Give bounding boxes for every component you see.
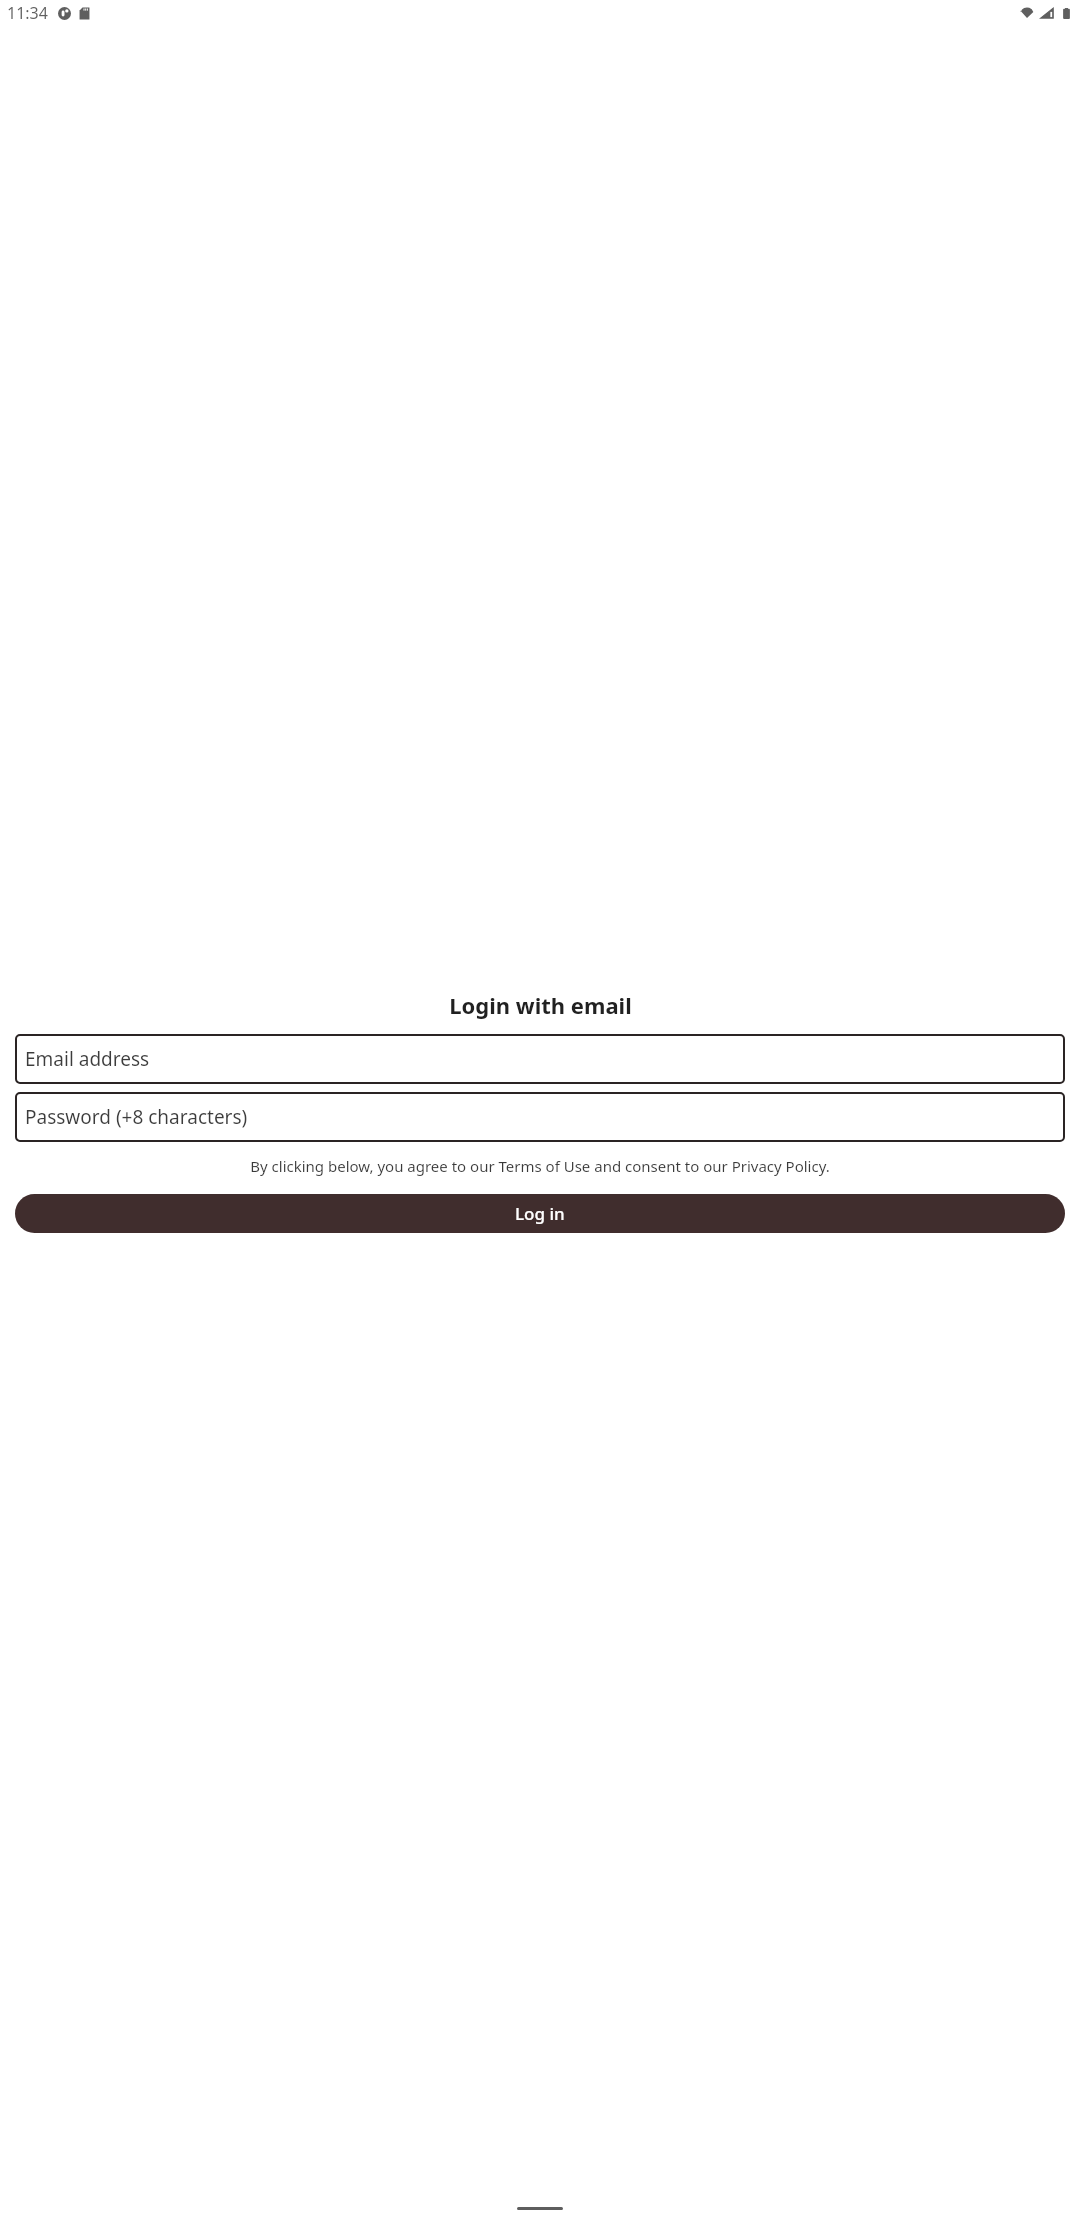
staticText: By clicking below, you agree to our Term… bbox=[15, 1156, 1065, 1176]
button[interactable]: Email address bbox=[15, 1034, 1065, 1084]
staticText: Password (+8 characters) bbox=[25, 1104, 248, 1130]
staticText: 11:34 bbox=[7, 2, 48, 24]
staticText: Log in bbox=[515, 1202, 565, 1225]
button[interactable]: Password (+8 characters) bbox=[15, 1092, 1065, 1142]
staticText: Email address bbox=[25, 1046, 150, 1072]
staticText: Login with email bbox=[449, 990, 632, 1020]
button[interactable]: Log in bbox=[15, 1194, 1065, 1233]
